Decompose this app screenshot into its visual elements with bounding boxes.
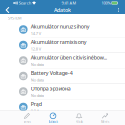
staticText: 0.0 A: [31, 108, 40, 114]
staticText: Adatok: [54, 6, 71, 14]
staticText: Battery Voltage-4: [31, 69, 73, 76]
button[interactable]: More options: [115, 6, 125, 14]
staticText: No data: [31, 93, 44, 98]
button[interactable]: Akumulátor üben citivisinébow...: [0, 53, 125, 68]
staticText: Akumulátor nuruzsihony: [31, 23, 90, 30]
button[interactable]: Servis: [14, 111, 40, 125]
staticText: No data: [31, 62, 44, 67]
staticText: SYSTEM: [8, 15, 22, 21]
staticText: 12.8 V: [31, 46, 41, 52]
staticText: Adatok: [48, 120, 57, 124]
button[interactable]: Battery Voltage-4: [0, 68, 125, 84]
staticText: Отопра эрзиона: [31, 85, 71, 92]
button[interactable]: Prąd: [0, 99, 125, 115]
staticText: Akumulátor üben citivisinébow...: [31, 54, 107, 61]
button[interactable]: Отопра эрзиона: [0, 84, 125, 99]
staticText: Mérés: [101, 120, 109, 124]
staticText: 100%: [102, 0, 111, 6]
staticText: Search: [19, 0, 31, 6]
staticText: 14.7 V: [31, 31, 41, 36]
button[interactable]: Hibák: [66, 111, 92, 125]
button[interactable]: Mérés: [92, 111, 118, 125]
staticText: 9:41 AM: [61, 0, 76, 6]
button[interactable]: Akumulátor nuruzsihony: [0, 22, 125, 37]
staticText: Akumulátor ramixisony: [31, 38, 87, 45]
staticText: No data: [31, 77, 44, 83]
staticText: Prąd: [31, 100, 42, 107]
staticText: Hibák: [75, 120, 82, 124]
staticText: Servis: [23, 120, 30, 124]
button[interactable]: Back: [0, 6, 13, 14]
button[interactable]: Adatok: [40, 111, 66, 125]
button[interactable]: Akumulátor ramixisony: [0, 37, 125, 53]
